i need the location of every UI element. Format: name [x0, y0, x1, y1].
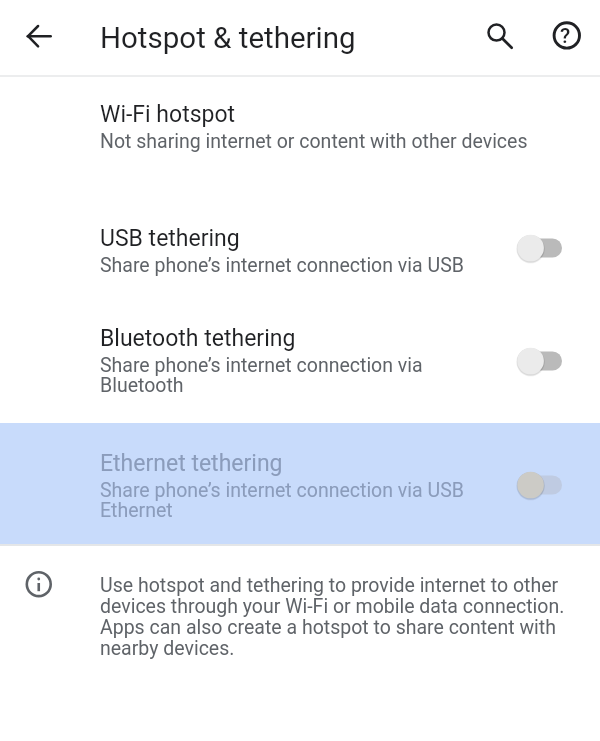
button[interactable]	[0, 296, 600, 423]
button[interactable]: Search	[474, 10, 522, 58]
button[interactable]	[0, 423, 600, 544]
staticText: Bluetooth tethering	[100, 325, 296, 352]
staticText: Share phone’s internet connection via US…	[100, 256, 464, 276]
staticText: ?	[560, 24, 571, 49]
other: Information	[23, 568, 55, 600]
button[interactable]: Help	[543, 12, 591, 60]
staticText: Wi-Fi hotspot	[100, 101, 236, 128]
staticText: Hotspot & tethering	[100, 21, 356, 56]
staticText: Not sharing internet or content with oth…	[100, 132, 528, 152]
button[interactable]: Ethernet tethering toggle	[498, 458, 582, 512]
staticText: Ethernet tethering	[100, 450, 283, 477]
button[interactable]: USB tethering toggle	[498, 221, 582, 275]
button[interactable]: Navigate up	[15, 12, 63, 60]
staticText: Use hotspot and tethering to provide int…	[100, 575, 565, 659]
staticText: USB tethering	[100, 225, 240, 252]
button[interactable]	[0, 77, 600, 189]
button[interactable]: Bluetooth tethering toggle	[498, 334, 582, 388]
staticText: Share phone’s internet connection via US…	[100, 481, 464, 521]
staticText: Share phone’s internet connection via Bl…	[100, 356, 423, 396]
button[interactable]	[0, 189, 600, 296]
